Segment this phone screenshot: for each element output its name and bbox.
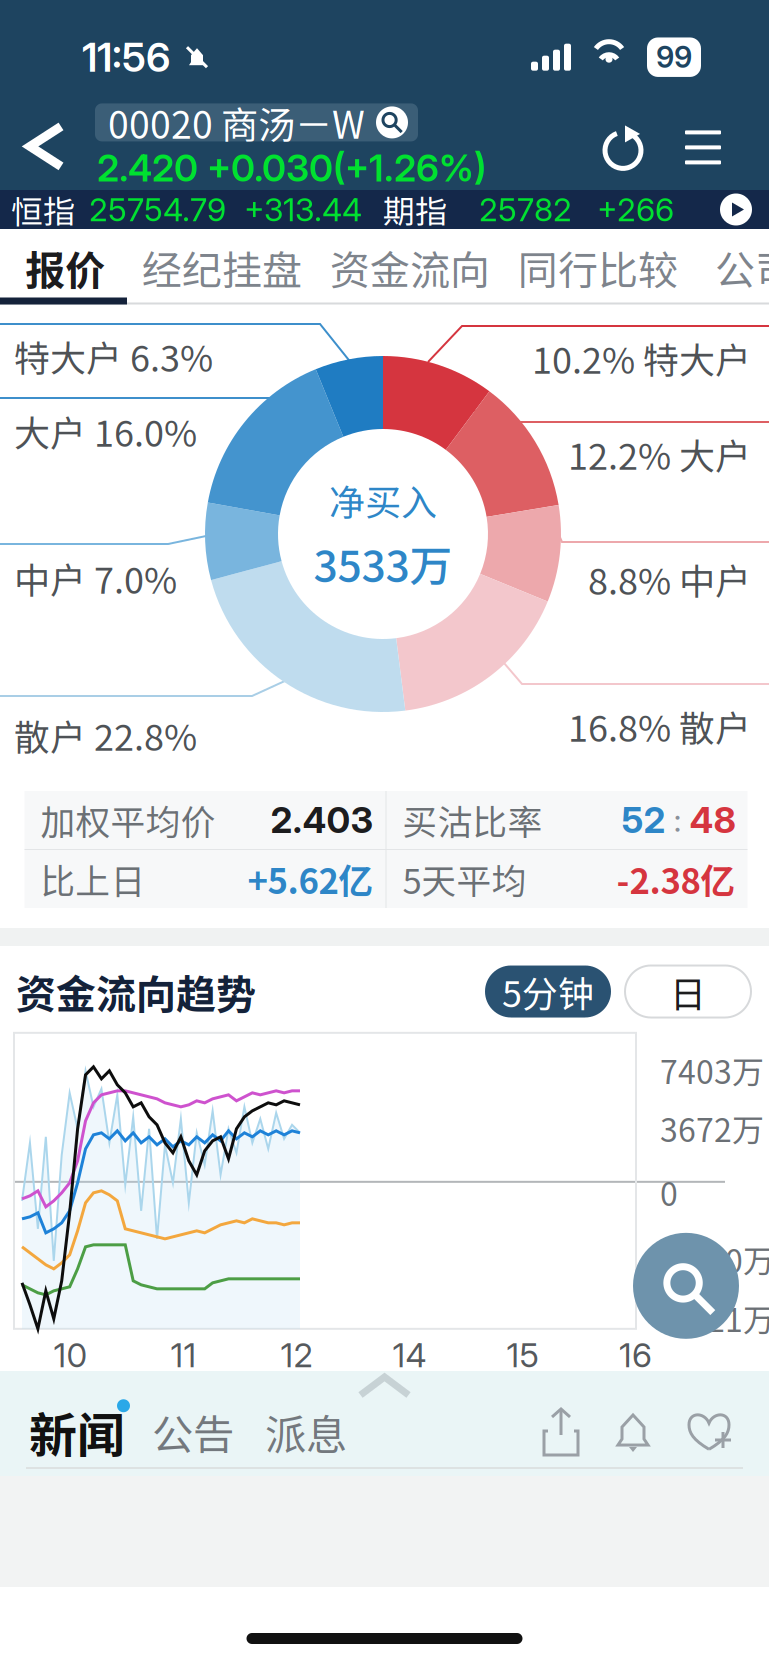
button[interactable]: 资金流向 <box>348 230 472 304</box>
staticText: 11:56 <box>82 33 170 81</box>
staticText: 派息 <box>265 1402 347 1462</box>
button[interactable]: 5分钟 <box>485 965 611 1017</box>
staticText: 2.403 <box>270 798 373 842</box>
staticText: -7521万 <box>660 1295 769 1341</box>
staticText: +5.62亿 <box>247 854 373 904</box>
button[interactable]: 经纪挂盘 <box>160 230 284 304</box>
button[interactable]: Play <box>720 193 752 225</box>
staticText: 新闻 <box>29 1397 125 1467</box>
staticText: 16 <box>619 1335 652 1375</box>
staticText: +266 <box>597 190 674 229</box>
staticText: 期指 <box>383 186 447 233</box>
button[interactable]: Refresh <box>603 124 643 170</box>
staticText: : <box>665 801 689 839</box>
staticText: 资金流向趋势 <box>16 962 256 1020</box>
staticText: 15 <box>506 1335 538 1375</box>
staticText: 报价 <box>25 238 105 296</box>
staticText: 99 <box>656 39 692 75</box>
staticText: 00020 商汤－W <box>108 95 365 149</box>
button[interactable]: 报价 <box>34 230 96 304</box>
staticText: 加权平均价 <box>40 795 215 845</box>
button[interactable]: 同行比较 <box>536 230 660 304</box>
staticText: 净买入 <box>329 474 437 526</box>
staticText: 10 <box>53 1335 87 1375</box>
staticText: 10.2% 特大户 <box>532 332 751 384</box>
button[interactable]: 新闻 <box>29 1397 125 1467</box>
staticText: 大户 16.0% <box>14 405 197 457</box>
staticText: 12 <box>280 1335 312 1375</box>
staticText: 比上日 <box>40 854 145 904</box>
staticText: 11 <box>170 1335 196 1375</box>
staticText: 特大户 6.3% <box>14 330 213 382</box>
staticText: 3533万 <box>313 532 452 594</box>
staticText: +313.44 <box>244 190 362 229</box>
staticText: 25754.79 <box>89 190 226 229</box>
button[interactable]: Share <box>539 1408 583 1456</box>
button[interactable]: Back <box>0 93 61 166</box>
staticText: 2.420 +0.030(+1.26%) <box>97 145 486 191</box>
button[interactable]: Alerts <box>583 1408 653 1456</box>
staticText: -3790万 <box>660 1236 769 1282</box>
staticText: 8.8% 中户 <box>588 553 751 605</box>
staticText: 16.8% 散户 <box>568 700 751 752</box>
staticText: 52 <box>621 798 665 842</box>
staticText: 14 <box>392 1335 426 1375</box>
button[interactable]: 00020 商汤－W <box>95 103 418 141</box>
staticText: 5天平均 <box>402 854 526 904</box>
staticText: 散户 22.8% <box>14 709 197 761</box>
button[interactable]: Search <box>633 1233 739 1339</box>
staticText: 公司 <box>715 238 769 296</box>
staticText: 资金流向 <box>330 238 490 296</box>
staticText: 48 <box>689 798 735 842</box>
staticText: 12.2% 大户 <box>568 428 751 480</box>
button[interactable]: 公司 <box>724 230 769 304</box>
staticText: 日 <box>670 965 706 1017</box>
button[interactable]: 派息 <box>234 1402 347 1462</box>
button[interactable]: 公告 <box>125 1402 234 1462</box>
staticText: 买沽比率 <box>402 795 542 845</box>
button[interactable]: Add to watchlist <box>653 1408 735 1456</box>
staticText: 5分钟 <box>502 965 594 1017</box>
staticText: 0 <box>660 1169 678 1215</box>
staticText: 中户 7.0% <box>14 552 177 604</box>
staticText: -2.38亿 <box>616 854 735 904</box>
button[interactable]: Menu <box>685 130 721 164</box>
staticText: 同行比较 <box>518 238 678 296</box>
button[interactable]: 日 <box>625 965 751 1017</box>
staticText: 经纪挂盘 <box>142 238 302 296</box>
staticText: 恒指 <box>11 186 75 233</box>
staticText: 公告 <box>152 1402 234 1462</box>
staticText: 3672万 <box>660 1105 764 1151</box>
staticText: 7403万 <box>660 1047 764 1093</box>
staticText: 25782 <box>479 190 572 229</box>
